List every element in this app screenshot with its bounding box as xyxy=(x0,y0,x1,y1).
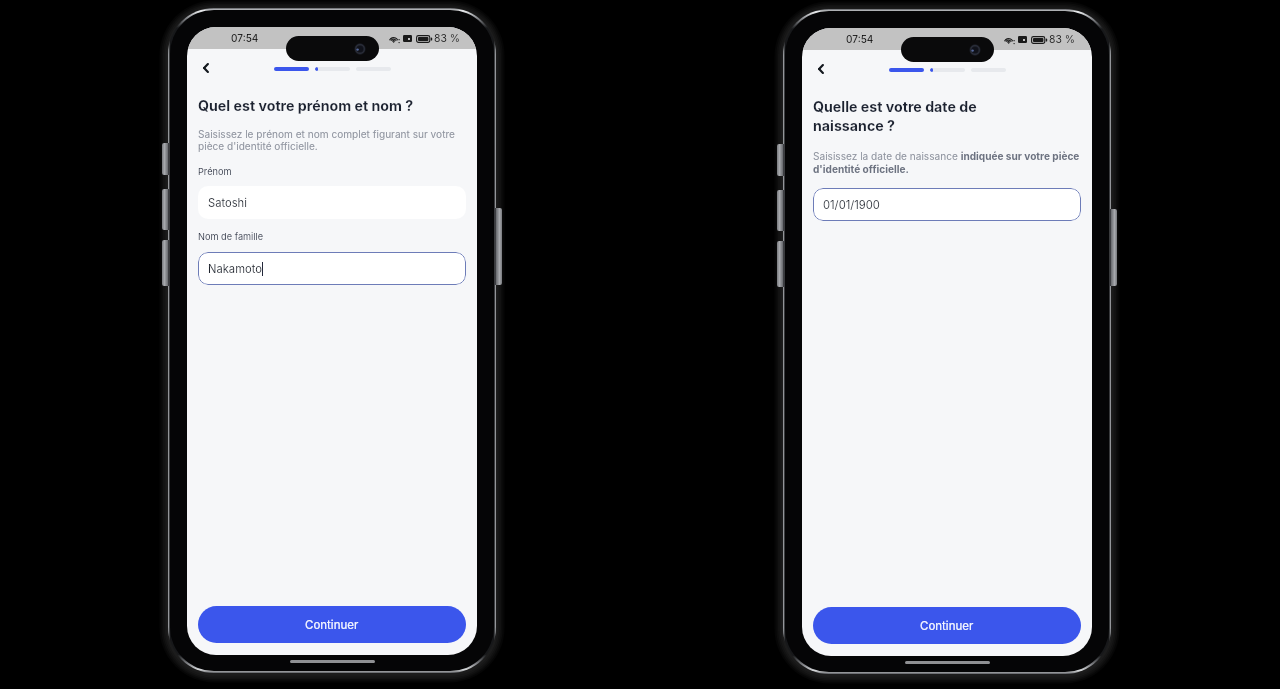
button[interactable]: Continuer xyxy=(813,607,1081,644)
staticText: Prénom xyxy=(198,166,232,177)
staticText: 07:54 xyxy=(231,32,259,44)
staticText: Saisissez le prénom et nom complet figur… xyxy=(198,128,466,153)
staticText: Nakamoto xyxy=(208,262,262,276)
staticText: Quel est votre prénom et nom ? xyxy=(198,97,414,114)
staticText: Continuer xyxy=(305,618,359,632)
button[interactable]: Continuer xyxy=(198,606,466,643)
staticText: Satoshi xyxy=(208,196,247,210)
staticText: Continuer xyxy=(920,619,974,633)
staticText: 83 % xyxy=(1049,33,1075,46)
staticText: Saisissez la date de naissance indiquée … xyxy=(813,150,1081,175)
button[interactable]: Satoshi xyxy=(198,186,466,219)
button[interactable]: Back xyxy=(809,57,833,81)
button[interactable]: Nakamoto xyxy=(198,252,466,285)
staticText: 07:54 xyxy=(846,33,874,45)
staticText: 83 % xyxy=(434,32,460,45)
staticText: 01/01/1900 xyxy=(823,198,880,212)
button[interactable]: Back xyxy=(194,56,218,80)
staticText: Quelle est votre date de naissance ? xyxy=(813,98,977,135)
staticText: Nom de famille xyxy=(198,231,264,242)
button[interactable]: 01/01/1900 xyxy=(813,188,1081,221)
